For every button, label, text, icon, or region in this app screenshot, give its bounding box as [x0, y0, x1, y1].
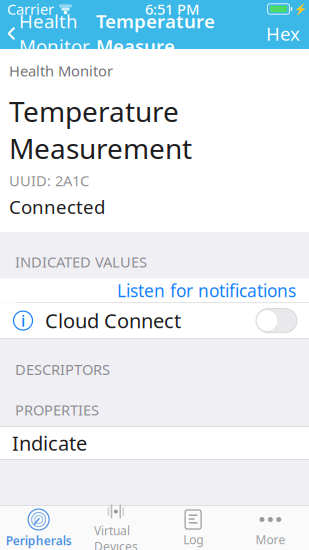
staticText: Temperature Measurement [9, 92, 192, 167]
staticText: Cloud Connect [45, 307, 181, 334]
staticText: More [255, 531, 285, 547]
staticText: PROPERTIES [15, 400, 99, 420]
button[interactable]: More [232, 506, 309, 550]
staticText: Peripherals [6, 532, 72, 548]
staticText: Hex [266, 21, 300, 46]
staticText: Virtual Devices [94, 523, 138, 550]
staticText: INDICATED VALUES [15, 252, 147, 272]
staticText: Listen for notifications [117, 279, 296, 302]
button[interactable]: Health Monitor [0, 5, 90, 62]
button[interactable]: Log [154, 506, 232, 550]
staticText: DESCRIPTORS [15, 360, 110, 379]
staticText: Connected [9, 194, 105, 219]
button[interactable]: Peripherals [0, 506, 77, 550]
staticText: Health Monitor [9, 61, 113, 80]
button[interactable]: Hex [257, 16, 309, 51]
button[interactable]: Virtual Devices [77, 506, 154, 550]
button[interactable]: Listen for notifications [0, 279, 309, 303]
staticText: Indicate [12, 430, 87, 456]
staticText: i [21, 310, 25, 331]
staticText: Log [183, 531, 203, 547]
staticText: Carrier [7, 0, 54, 19]
staticText: UUID: 2A1C [9, 171, 89, 190]
staticText: Temperature Measure... [96, 9, 215, 58]
staticText: 6:51 PM [145, 0, 199, 19]
button[interactable]: Indicate [0, 427, 309, 459]
button[interactable]: i [0, 303, 309, 338]
staticText: Health Monitor [19, 9, 90, 58]
staticText: ⚡ [293, 3, 306, 15]
